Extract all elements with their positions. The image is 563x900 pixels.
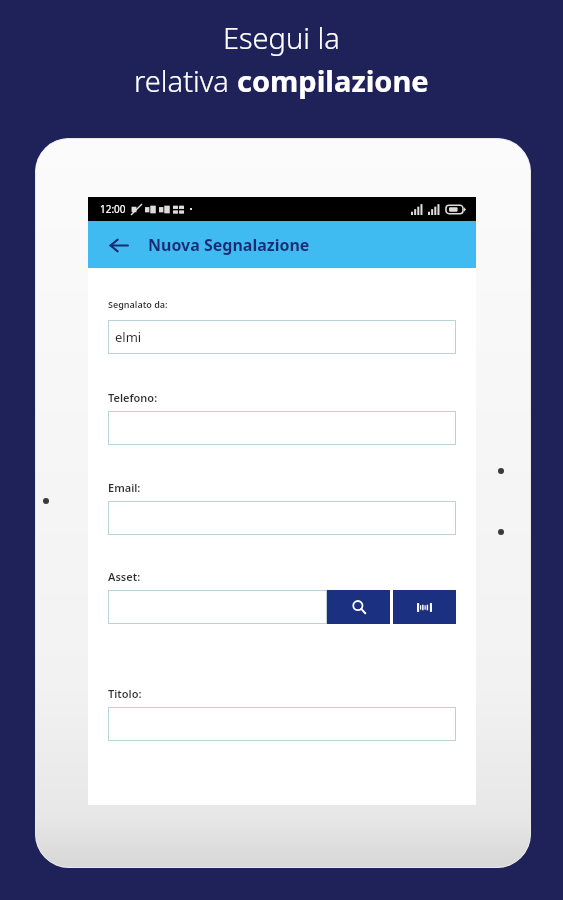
button[interactable] (108, 707, 456, 741)
button[interactable] (108, 501, 456, 535)
staticText: Asset: (108, 569, 141, 584)
staticText: Telefono: (108, 390, 158, 405)
button[interactable] (108, 590, 327, 624)
staticText: Titolo: (108, 686, 142, 701)
staticText: 12:00 (100, 202, 126, 216)
staticText: Segnalato da: (108, 298, 168, 310)
button[interactable]: elmi (108, 320, 456, 354)
button[interactable]: Scan barcode (393, 590, 456, 624)
staticText: Nuova Segnalazione (148, 234, 310, 256)
staticText: Email: (108, 480, 141, 495)
staticText: Esegui la (223, 18, 340, 57)
button[interactable]: Search asset (327, 590, 390, 624)
button[interactable] (108, 411, 456, 445)
staticText: compilazione (237, 61, 429, 100)
button[interactable]: Back (98, 225, 138, 265)
staticText: relativa (134, 61, 237, 100)
staticText: elmi (115, 328, 142, 346)
